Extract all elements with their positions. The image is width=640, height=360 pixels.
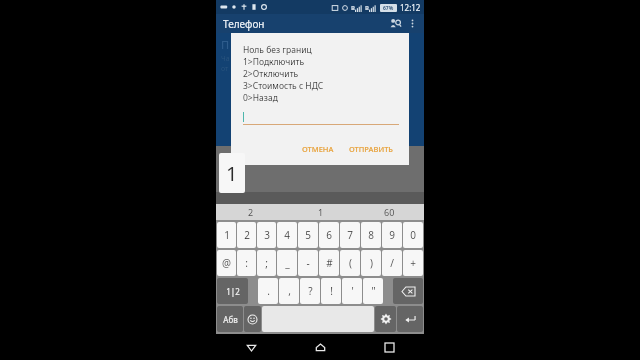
button[interactable]: + [403, 250, 423, 276]
button[interactable]: ) [361, 250, 381, 276]
staticText: 3 [264, 228, 270, 242]
staticText: П [221, 37, 230, 52]
button[interactable]: " [363, 278, 383, 304]
button[interactable]: 2 [237, 222, 256, 248]
staticText: Ноль без границ [243, 44, 312, 56]
button[interactable]: - [298, 250, 318, 276]
button[interactable]: ОТПРАВИТЬ [343, 140, 399, 158]
staticText: + [410, 256, 416, 270]
button[interactable]: 1 [217, 222, 236, 248]
button[interactable]: Home [286, 334, 355, 360]
button[interactable]: . [258, 278, 278, 304]
staticText: 6 [326, 228, 332, 242]
staticText: ! [330, 284, 333, 298]
staticText: Ча [221, 54, 230, 64]
staticText: Телефон [223, 17, 265, 31]
staticText: 3>Стоимость с НДС [243, 80, 324, 92]
button[interactable]: Recent apps [355, 334, 424, 360]
staticText: . [267, 284, 270, 298]
button[interactable]: Settings [375, 306, 396, 332]
staticText: ( [349, 256, 352, 270]
staticText: # [326, 256, 333, 270]
button[interactable]: Emoji [244, 306, 261, 332]
staticText: _ [285, 256, 290, 270]
staticText: - [306, 256, 310, 270]
button[interactable]: ' [342, 278, 362, 304]
staticText: ' [351, 284, 354, 298]
button[interactable]: 3 [257, 222, 276, 248]
staticText: ) [370, 256, 373, 270]
staticText: 1 [224, 228, 230, 242]
button[interactable]: Backspace [393, 278, 423, 304]
button[interactable]: Search contacts [387, 15, 404, 32]
staticText: 2 [248, 206, 254, 218]
button[interactable]: @ [217, 250, 236, 276]
staticText: 0 [410, 228, 416, 242]
button[interactable]: Enter [397, 306, 423, 332]
staticText: 8 [368, 228, 374, 242]
button[interactable]: ? [300, 278, 320, 304]
button[interactable]: More options [404, 15, 421, 32]
button[interactable]: , [279, 278, 299, 304]
staticText: ОТПРАВИТЬ [349, 144, 393, 154]
button[interactable]: ! [321, 278, 341, 304]
staticText: 2>Отключить [243, 68, 299, 80]
staticText: от [221, 64, 229, 74]
button[interactable]: : [237, 250, 256, 276]
button[interactable]: Абв [217, 306, 243, 332]
staticText: B [365, 4, 369, 12]
staticText: 1|2 [226, 286, 240, 297]
staticText: 2 [244, 228, 250, 242]
button[interactable]: ОТМЕНА [296, 140, 340, 158]
button[interactable]: 9 [382, 222, 402, 248]
staticText: ? [308, 284, 313, 298]
button[interactable]: 1 [286, 204, 355, 220]
button[interactable]: 0 [403, 222, 423, 248]
staticText: " [371, 284, 376, 298]
button[interactable]: 1|2 [217, 278, 248, 304]
button[interactable]: Back [216, 334, 286, 360]
button[interactable]: 60 [355, 204, 424, 220]
staticText: ; [265, 256, 268, 270]
button[interactable]: 4 [277, 222, 297, 248]
staticText: 12:12 [400, 2, 421, 13]
button[interactable]: / [382, 250, 402, 276]
staticText: / [390, 256, 394, 270]
staticText: 1 [226, 160, 238, 187]
button[interactable]: 6 [319, 222, 339, 248]
staticText: 1 [318, 206, 324, 218]
staticText: 5 [305, 228, 311, 242]
button[interactable]: 8 [361, 222, 381, 248]
staticText: 67% [383, 5, 394, 12]
staticText: 0>Назад [243, 92, 278, 104]
button[interactable]: ; [257, 250, 276, 276]
staticText: Абв [223, 314, 238, 325]
staticText: : [245, 256, 248, 270]
staticText: , [288, 284, 291, 298]
staticText: B [351, 4, 355, 12]
staticText: 4 [284, 228, 290, 242]
button[interactable]: # [319, 250, 339, 276]
button[interactable]: 7 [340, 222, 360, 248]
button[interactable]: _ [277, 250, 297, 276]
button[interactable]: 5 [298, 222, 318, 248]
staticText: @ [222, 256, 231, 270]
button[interactable]: 2 [216, 204, 286, 220]
staticText: ОТМЕНА [302, 144, 334, 154]
staticText: 60 [384, 206, 395, 218]
staticText: 9 [389, 228, 395, 242]
staticText: 1>Подключить [243, 56, 305, 68]
button[interactable]: ( [340, 250, 360, 276]
staticText: 7 [347, 228, 353, 242]
